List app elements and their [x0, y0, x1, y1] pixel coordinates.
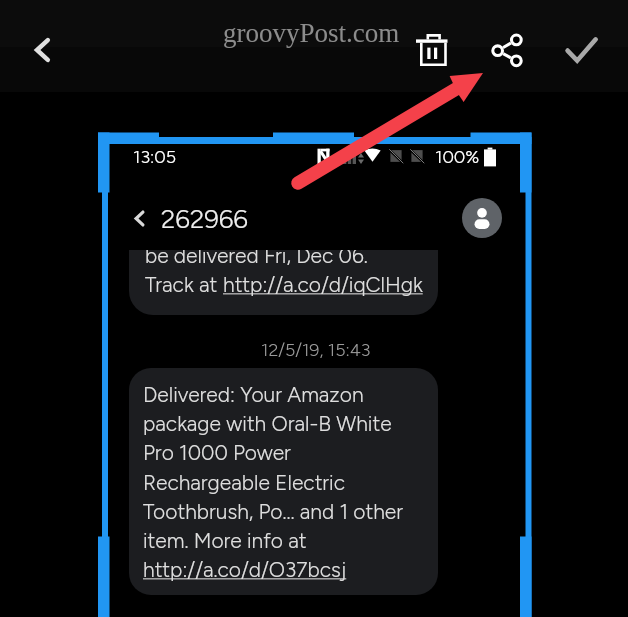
button[interactable]: Back [123, 202, 155, 234]
staticText: package with Oral-B White [143, 411, 392, 436]
staticText: http://a.co/d/iqClHgk [223, 272, 423, 297]
staticText: Track at [145, 272, 223, 297]
button[interactable]: Delete [408, 25, 458, 75]
staticText: 12/5/19, 15:43 [261, 339, 371, 361]
staticText: Delivered: Your Amazon [143, 382, 364, 407]
staticText: 100% [435, 146, 480, 168]
button[interactable]: Back [18, 25, 68, 75]
staticText: 262966 [161, 203, 248, 234]
staticText: Pro 1000 Power [143, 440, 291, 465]
button[interactable]: Share [482, 25, 532, 75]
staticText: groovyPost.com [223, 18, 400, 48]
staticText: Rechargeable Electric [143, 470, 346, 495]
button[interactable]: Contact [462, 198, 502, 238]
staticText: http://a.co/d/O37bcsj [143, 557, 347, 582]
staticText: Toothbrush, Po… and 1 other [143, 499, 403, 524]
staticText: item. More info at [143, 528, 307, 553]
button[interactable]: Done [556, 25, 606, 75]
staticText: be delivered Fri, Dec 06. [145, 250, 368, 268]
staticText: 13:05 [133, 146, 177, 168]
